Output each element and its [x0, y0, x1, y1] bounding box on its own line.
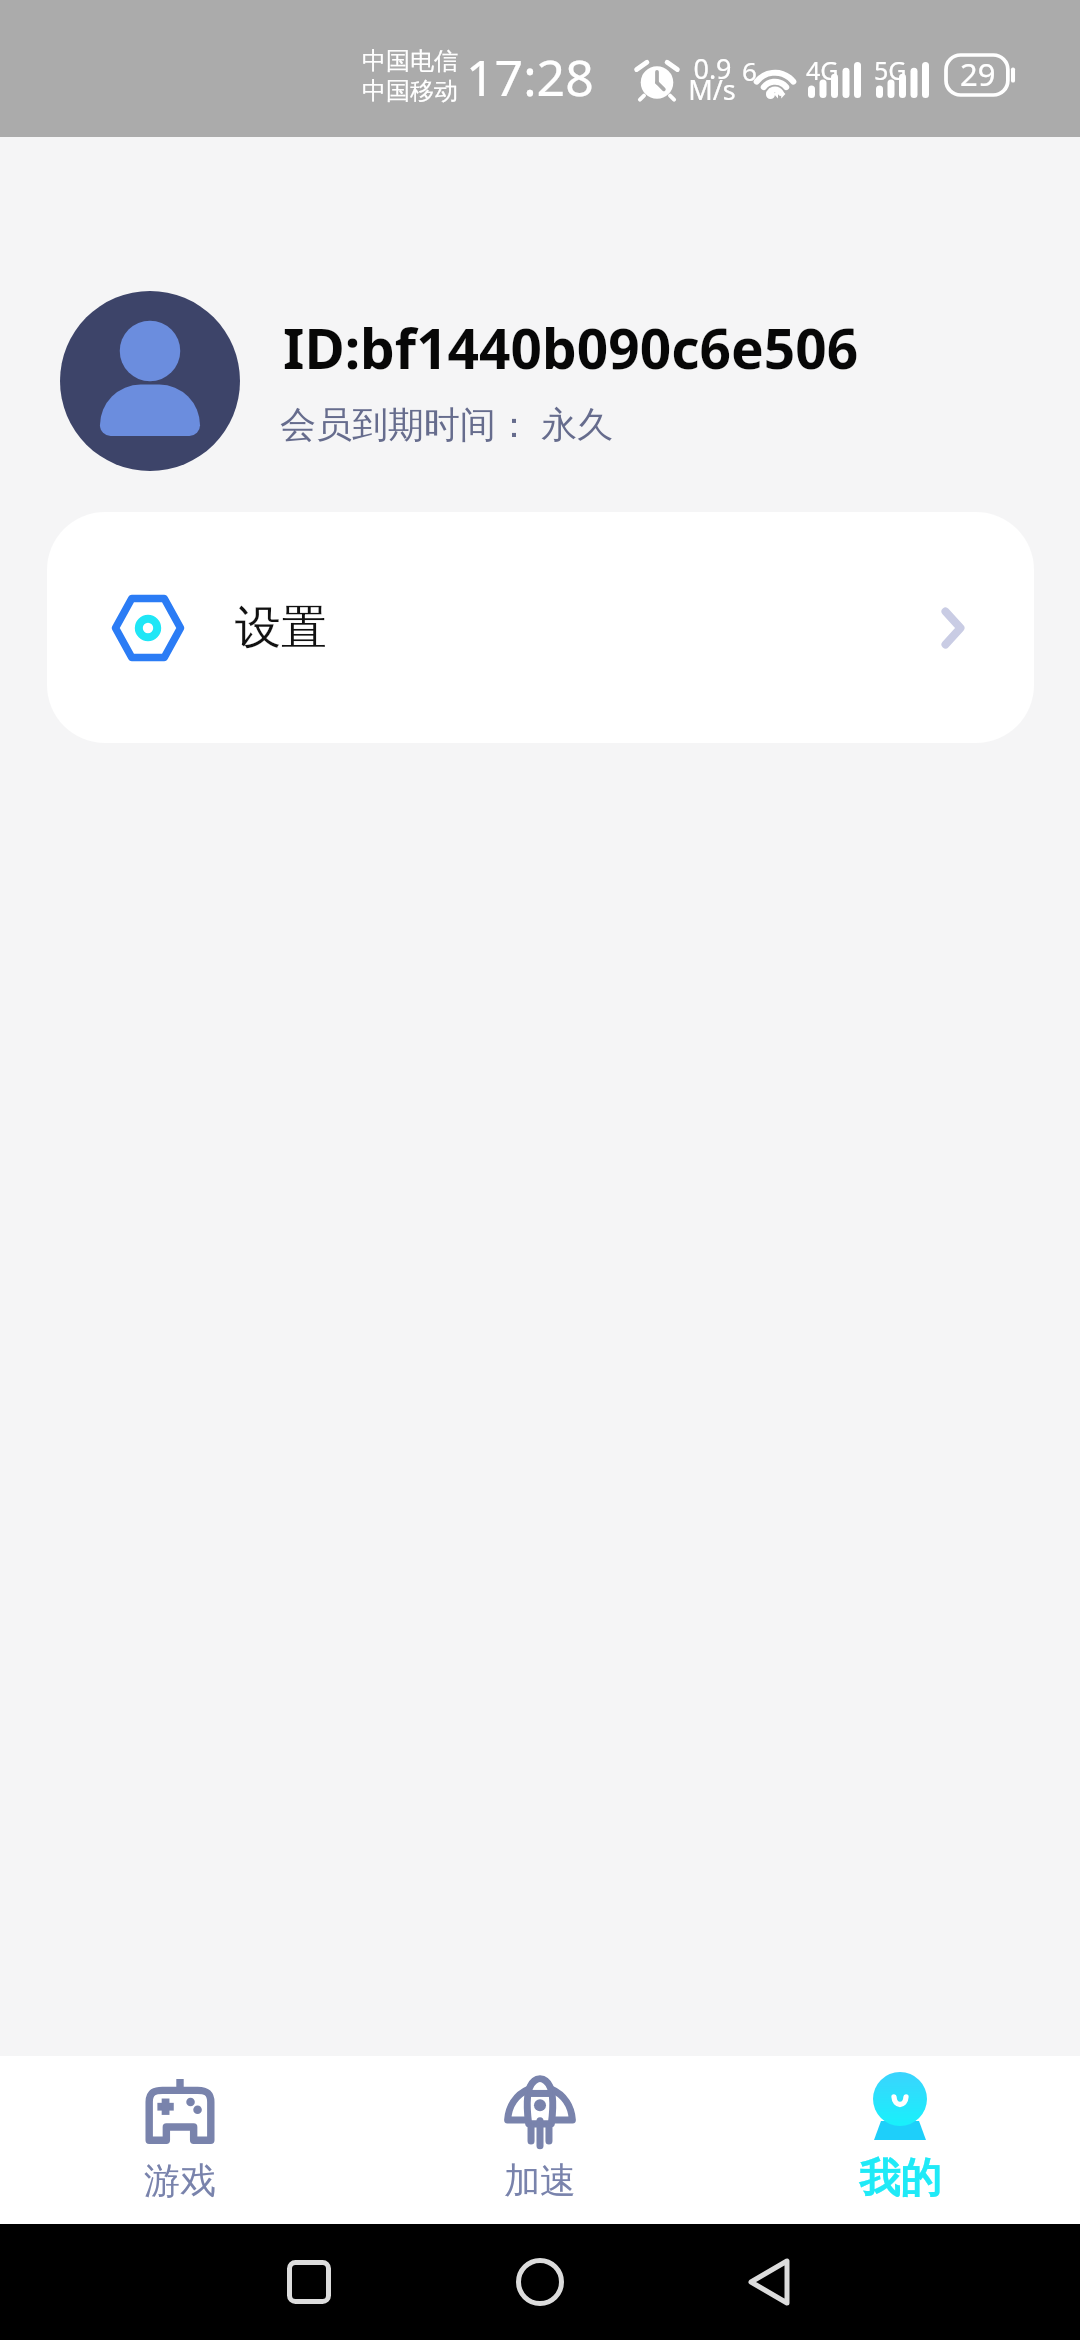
- staticText: 4G: [806, 53, 839, 87]
- button[interactable]: Recents: [269, 2242, 349, 2322]
- staticText: 0.9: [693, 50, 732, 87]
- staticText: 会员到期时间： 永久: [280, 399, 614, 448]
- button[interactable]: Back: [729, 2242, 809, 2322]
- button[interactable]: Avatar: [60, 291, 240, 471]
- staticText: 17:28: [466, 43, 594, 111]
- staticText: 我的: [859, 2153, 941, 2205]
- staticText: 5G: [874, 53, 907, 87]
- staticText: 中国移动: [362, 76, 458, 106]
- staticText: 29: [960, 53, 996, 95]
- staticText: 中国电信: [362, 46, 458, 76]
- staticText: M/s: [688, 71, 736, 108]
- staticText: 6: [742, 53, 757, 88]
- staticText: ID:bf1440b090c6e506: [283, 310, 859, 385]
- button[interactable]: 游戏: [0, 2072, 360, 2203]
- staticText: 游戏: [144, 2158, 216, 2203]
- button[interactable]: 加速: [360, 2072, 720, 2203]
- button[interactable]: Home: [500, 2242, 580, 2322]
- staticText: 设置: [235, 599, 327, 657]
- button[interactable]: 设置: [47, 512, 1034, 743]
- staticText: 加速: [504, 2158, 576, 2203]
- button[interactable]: 我的: [720, 2070, 1080, 2205]
